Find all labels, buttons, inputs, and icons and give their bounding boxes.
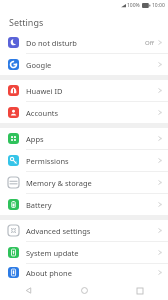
staticText: 100% — [127, 2, 140, 9]
button[interactable]: Home — [56, 281, 112, 300]
button[interactable]: Memory & storage — [0, 172, 168, 193]
staticText: Off — [145, 39, 154, 47]
button[interactable]: Battery — [0, 194, 168, 215]
button[interactable]: Permissions — [0, 150, 168, 171]
staticText: Advanced settings — [26, 226, 158, 236]
staticText: About phone — [26, 268, 158, 278]
staticText: Battery — [26, 200, 158, 210]
staticText: Google — [26, 60, 158, 70]
staticText: Accounts — [26, 108, 158, 118]
button[interactable]: Google — [0, 54, 168, 75]
button[interactable]: Advanced settings — [0, 220, 168, 241]
button[interactable]: Back — [0, 281, 56, 300]
button[interactable]: Accounts — [0, 102, 168, 123]
staticText: 10:00 — [152, 2, 165, 9]
button[interactable]: Apps — [0, 128, 168, 149]
staticText: Do not disturb — [26, 38, 145, 48]
button[interactable]: Do not disturb — [0, 32, 168, 53]
staticText: Huawei ID — [26, 86, 158, 96]
button[interactable]: System update — [0, 242, 168, 263]
staticText: Memory & storage — [26, 178, 158, 188]
button[interactable]: Huawei ID — [0, 80, 168, 101]
button[interactable]: Recent apps — [112, 281, 168, 300]
button[interactable]: About phone — [0, 264, 168, 281]
staticText: Permissions — [26, 156, 158, 166]
staticText: System update — [26, 248, 158, 258]
staticText: Settings — [9, 16, 44, 28]
staticText: Apps — [26, 134, 158, 144]
